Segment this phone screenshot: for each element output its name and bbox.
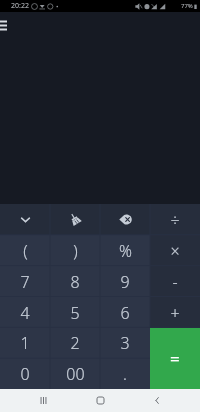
staticText: × bbox=[170, 240, 180, 262]
staticText: 00 bbox=[66, 363, 85, 385]
button[interactable]: - bbox=[150, 266, 200, 297]
button[interactable]: 00 bbox=[50, 358, 100, 389]
staticText: 0 bbox=[20, 363, 30, 385]
button[interactable]: + bbox=[150, 297, 200, 328]
staticText: - bbox=[172, 271, 178, 293]
staticText: 77% bbox=[181, 2, 193, 10]
button[interactable]: Collapse bbox=[0, 204, 50, 235]
staticText: 8 bbox=[70, 271, 80, 293]
button[interactable]: Home bbox=[86, 389, 114, 412]
button[interactable]: ( bbox=[0, 235, 50, 266]
staticText: 9 bbox=[120, 271, 130, 293]
button[interactable]: 3 bbox=[100, 328, 150, 358]
staticText: . bbox=[123, 363, 127, 385]
button[interactable]: 1 bbox=[0, 328, 50, 358]
staticText: 6 bbox=[120, 302, 130, 324]
staticText: + bbox=[170, 302, 180, 324]
button[interactable]: 5 bbox=[50, 297, 100, 328]
button[interactable]: × bbox=[150, 235, 200, 266]
staticText: 4 bbox=[20, 302, 30, 324]
button[interactable]: % bbox=[100, 235, 150, 266]
staticText: 7 bbox=[20, 271, 30, 293]
button[interactable]: ) bbox=[50, 235, 100, 266]
staticText: ÷ bbox=[170, 209, 180, 231]
button[interactable]: Recents bbox=[29, 389, 57, 412]
staticText: 1 bbox=[20, 332, 30, 354]
button[interactable]: Back bbox=[143, 389, 171, 412]
staticText: 3 bbox=[120, 332, 130, 354]
staticText: ( bbox=[23, 240, 28, 262]
button[interactable]: 6 bbox=[100, 297, 150, 328]
button[interactable]: ÷ bbox=[150, 204, 200, 235]
staticText: = bbox=[170, 347, 180, 370]
staticText: % bbox=[119, 240, 132, 262]
staticText: 20:22 bbox=[11, 1, 29, 11]
button[interactable]: Clear all bbox=[50, 204, 100, 235]
button[interactable]: 2 bbox=[50, 328, 100, 358]
staticText: 2 bbox=[70, 332, 80, 354]
button[interactable]: 9 bbox=[100, 266, 150, 297]
button[interactable]: 4 bbox=[0, 297, 50, 328]
button[interactable]: Menu bbox=[0, 14, 12, 36]
button[interactable]: = bbox=[150, 328, 200, 389]
button[interactable]: 0 bbox=[0, 358, 50, 389]
button[interactable]: 7 bbox=[0, 266, 50, 297]
button[interactable]: 8 bbox=[50, 266, 100, 297]
button[interactable]: . bbox=[100, 358, 150, 389]
staticText: 5 bbox=[70, 302, 80, 324]
staticText: ) bbox=[73, 240, 78, 262]
button[interactable]: Backspace bbox=[100, 204, 150, 235]
